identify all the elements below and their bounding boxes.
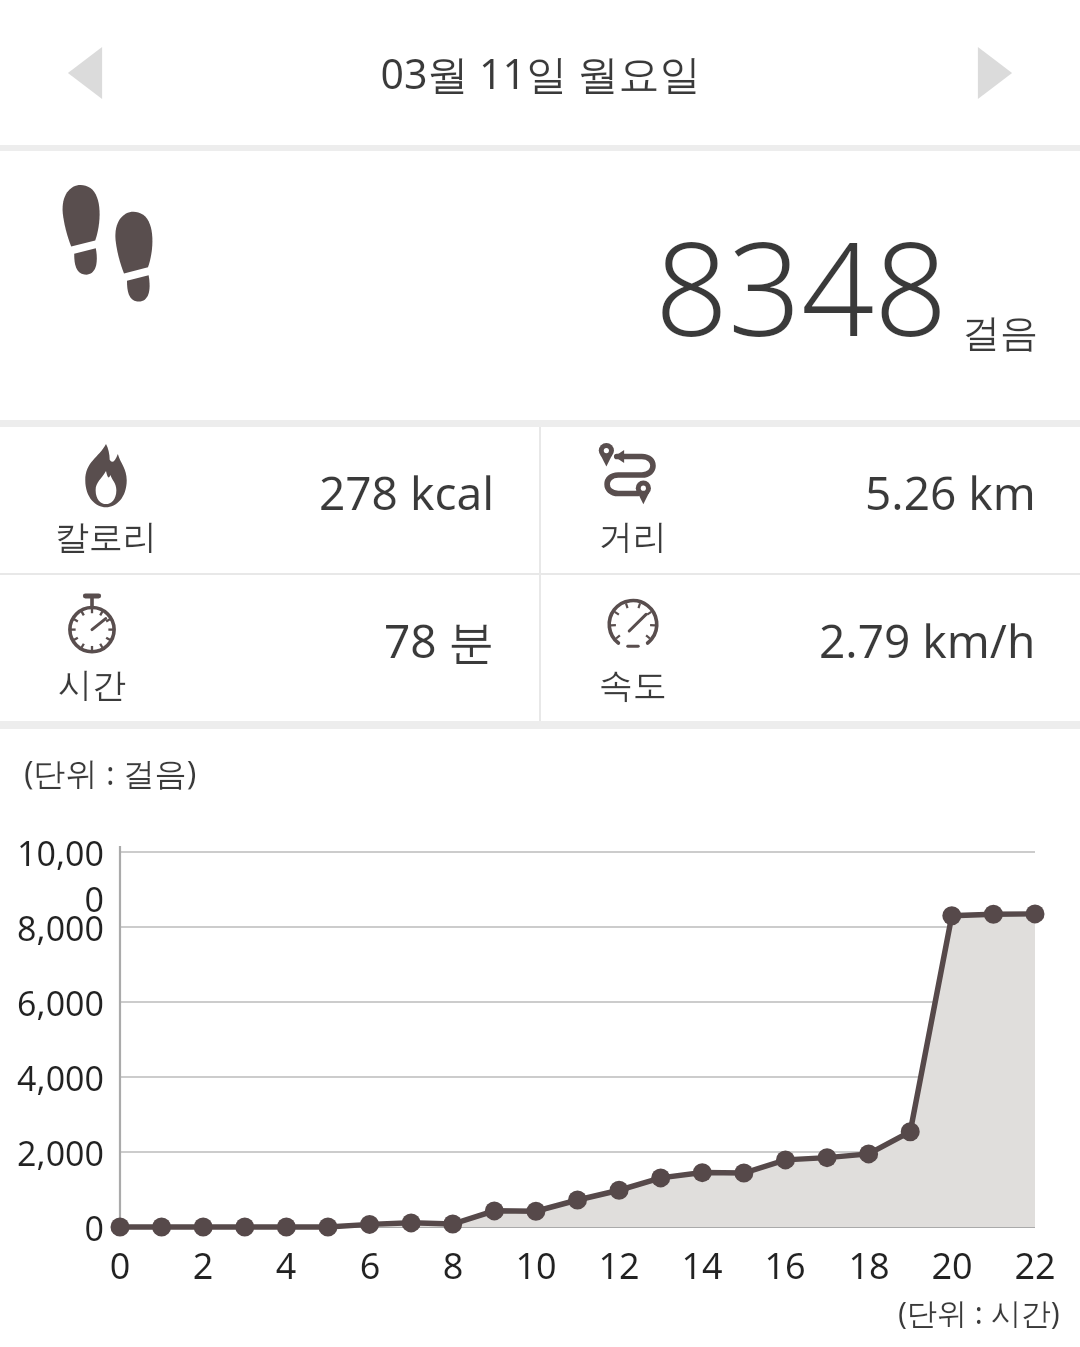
staticText: 10,000 — [0, 830, 104, 922]
button[interactable]: 속도 — [541, 575, 1080, 721]
staticText: 2,000 — [0, 1130, 104, 1176]
button[interactable]: 거리 — [541, 427, 1080, 573]
button[interactable]: 칼로리 — [0, 427, 539, 573]
staticText: 4 — [256, 1241, 316, 1290]
staticText: 8348 — [655, 199, 948, 373]
staticText: 시간 — [58, 664, 126, 707]
staticText: 22 — [1005, 1241, 1065, 1290]
staticText: 12 — [589, 1241, 649, 1290]
staticText: 칼로리 — [55, 516, 157, 559]
staticText: 14 — [672, 1241, 732, 1290]
button[interactable]: 시간 — [0, 575, 539, 721]
staticText: 278 kcal — [319, 461, 495, 524]
staticText: 10 — [506, 1241, 566, 1290]
staticText: 2 — [173, 1241, 233, 1290]
staticText: 0 — [90, 1241, 150, 1290]
staticText: 8,000 — [0, 905, 104, 951]
staticText: 78 분 — [384, 609, 495, 672]
staticText: 8 — [423, 1241, 483, 1290]
staticText: 2.79 km/h — [819, 609, 1036, 672]
staticText: 4,000 — [0, 1055, 104, 1101]
staticText: (단위 : 걸음) — [24, 751, 197, 795]
staticText: 18 — [839, 1241, 899, 1290]
staticText: 5.26 km — [865, 461, 1036, 524]
staticText: 20 — [922, 1241, 982, 1290]
staticText: 거리 — [599, 516, 667, 559]
button[interactable]: 8348 — [0, 151, 1080, 420]
staticText: (단위 : 시간) — [898, 1292, 1060, 1333]
staticText: 걸음 — [962, 309, 1038, 357]
staticText: 6,000 — [0, 980, 104, 1026]
button[interactable]: Next day — [910, 0, 1080, 145]
staticText: 속도 — [599, 664, 667, 707]
staticText: 6 — [340, 1241, 400, 1290]
staticText: 0 — [0, 1205, 104, 1251]
staticText: 03월 11일 월요일 — [380, 45, 701, 101]
staticText: 16 — [755, 1241, 815, 1290]
button[interactable]: Previous day — [0, 0, 170, 145]
